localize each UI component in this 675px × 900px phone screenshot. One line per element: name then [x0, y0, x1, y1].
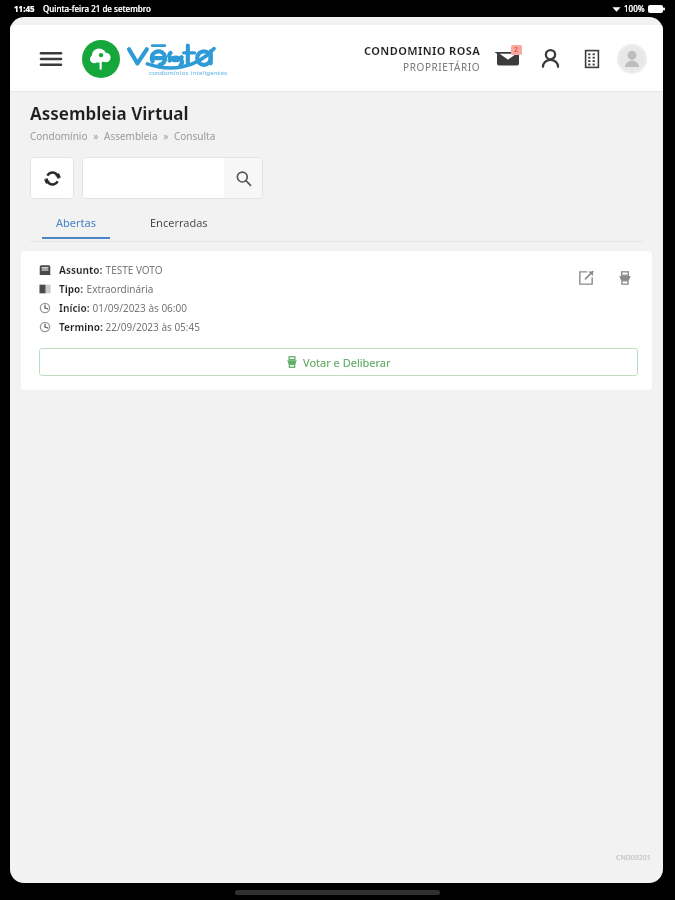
staticText: Assembleia Virtual	[30, 102, 189, 125]
button[interactable]: Imprimir	[612, 265, 638, 291]
staticText: TESTE VOTO	[103, 263, 163, 277]
staticText: 01/09/2023 às 06:00	[90, 301, 187, 315]
staticText: 11:45	[14, 3, 35, 14]
staticText: Extraordinária	[84, 282, 154, 296]
staticText: condomínios inteligentes	[149, 69, 228, 77]
staticText: »	[88, 129, 104, 143]
staticText: Tipo:	[59, 282, 84, 296]
staticText: Votar e Deliberar	[303, 355, 391, 370]
staticText: Assembleia	[104, 129, 158, 143]
button[interactable]: Atualizar	[30, 157, 74, 199]
staticText: »	[158, 129, 174, 143]
staticText: Termino:	[59, 320, 103, 334]
button[interactable]: Abertas	[30, 215, 122, 239]
button[interactable]: Conta	[617, 44, 647, 74]
staticText: Consulta	[174, 129, 216, 143]
staticText: 2	[514, 45, 519, 55]
button[interactable]: Mensagens	[493, 44, 523, 74]
button[interactable]: Votar e Deliberar	[39, 348, 638, 376]
staticText: 100%	[624, 3, 645, 14]
button[interactable]: Pesquisar	[224, 157, 263, 199]
staticText: Condomínio	[30, 129, 88, 143]
button[interactable]: Perfil	[535, 44, 565, 74]
staticText: Quinta-feira 21 de setembro	[43, 3, 151, 14]
staticText: CND09201	[616, 853, 651, 863]
button[interactable]: Menu	[38, 46, 64, 72]
staticText: Início:	[59, 301, 90, 315]
button[interactable]: Condomínio	[577, 44, 607, 74]
staticText: PROPRIETÁRIO	[403, 60, 481, 74]
staticText: Abertas	[56, 215, 96, 230]
staticText: Encerradas	[150, 215, 208, 230]
button[interactable]: Encerradas	[138, 215, 220, 239]
staticText: 22/09/2023 às 05:45	[103, 320, 200, 334]
staticText: Assunto:	[59, 263, 103, 277]
button[interactable]: Editar	[573, 265, 599, 291]
staticText: CONDOMINIO ROSA	[364, 43, 481, 58]
